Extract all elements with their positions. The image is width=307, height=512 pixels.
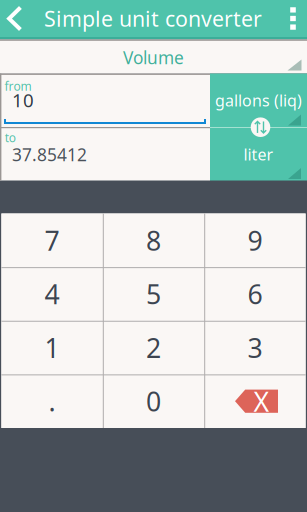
staticText: 8 <box>146 223 161 258</box>
staticText: Simple unit converter <box>44 4 262 33</box>
button[interactable]: Volume <box>0 39 307 73</box>
button[interactable]: 6 <box>204 267 306 321</box>
button[interactable]: liter <box>210 128 307 180</box>
button[interactable]: 8 <box>103 213 204 267</box>
staticText: Volume <box>123 46 184 69</box>
button[interactable]: 5 <box>103 267 204 321</box>
staticText: from <box>5 78 32 94</box>
staticText: to <box>5 130 16 145</box>
staticText: 37.85412 <box>12 143 87 166</box>
staticText: 3 <box>247 330 262 365</box>
staticText: gallons (liq) <box>215 90 302 111</box>
button[interactable]: 1 <box>1 321 103 374</box>
staticText: liter <box>243 144 273 165</box>
staticText: 7 <box>45 223 60 258</box>
staticText: 1 <box>45 330 60 365</box>
staticText: 6 <box>247 276 262 312</box>
button[interactable]: gallons (liq) <box>210 73 307 127</box>
button[interactable]: 7 <box>1 213 103 267</box>
button[interactable]: 2 <box>103 321 204 374</box>
staticText: 2 <box>146 330 161 365</box>
button[interactable]: More options <box>280 0 306 37</box>
button[interactable]: . <box>1 374 103 428</box>
staticText: 0 <box>146 383 161 419</box>
button[interactable]: Swap units <box>251 117 270 137</box>
staticText: X <box>254 384 270 419</box>
button[interactable]: Backspace <box>204 374 306 428</box>
button[interactable]: 0 <box>103 374 204 428</box>
button[interactable]: 4 <box>1 267 103 321</box>
staticText: 9 <box>247 223 262 258</box>
staticText: 10 <box>12 88 34 112</box>
staticText: 5 <box>146 276 161 312</box>
staticText: 4 <box>45 276 60 312</box>
button[interactable]: 9 <box>204 213 306 267</box>
staticText: . <box>49 383 56 419</box>
button[interactable]: Back <box>0 0 29 37</box>
button[interactable]: 3 <box>204 321 306 374</box>
